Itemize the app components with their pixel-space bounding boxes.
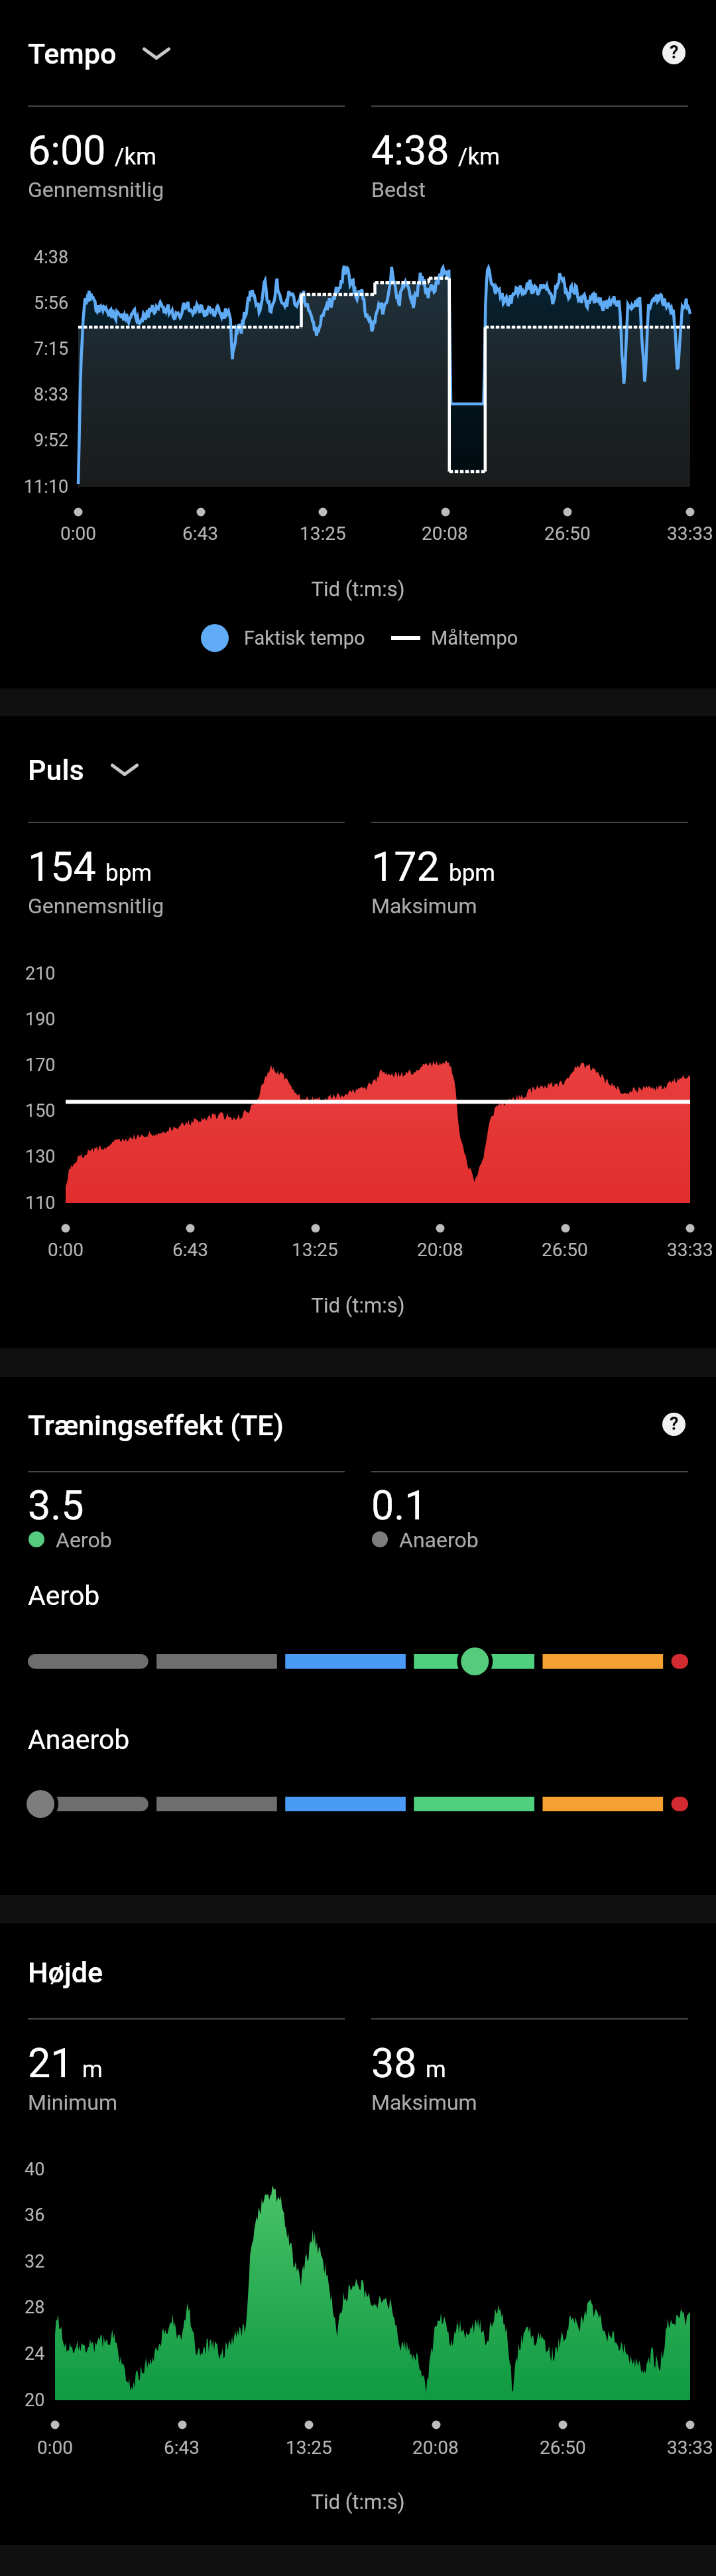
staticText: 33:33 [667,1239,713,1261]
staticText: 20:08 [412,2437,459,2459]
staticText: 6:43 [182,523,218,545]
staticText: Puls [28,753,84,787]
staticText: Tid (t:m:s) [0,577,716,601]
staticText: 172 [371,843,440,890]
staticText: Aerob [56,1527,112,1553]
staticText: /km [115,143,156,170]
staticText: 8:33 [34,384,69,405]
staticText: ? [670,1413,679,1435]
staticText: 38 [371,2039,417,2087]
staticText: 20 [25,2390,45,2411]
staticText: 26:50 [544,523,591,545]
staticText: 0:00 [37,2437,73,2459]
button[interactable]: Hjælp [648,1399,699,1449]
staticText: Tempo [28,37,117,70]
staticText: 13:25 [300,523,346,545]
staticText: Anaerob [28,1724,130,1756]
staticText: m [426,2056,446,2083]
button[interactable]: Hjælp [648,27,699,78]
staticText: 0:00 [48,1239,84,1261]
staticText: 7:15 [34,338,69,359]
staticText: Anaerob [399,1527,479,1553]
staticText: Tid (t:m:s) [0,1293,716,1317]
staticText: 36 [25,2205,45,2226]
staticText: 32 [25,2251,45,2272]
staticText: 13:25 [292,1239,338,1261]
staticText: 3.5 [28,1482,84,1529]
staticText: 170 [25,1055,56,1076]
staticText: 33:33 [667,523,713,545]
staticText: 154 [28,843,96,890]
staticText: Måltempo [431,627,518,649]
button[interactable]: Skjul afsnit [99,743,150,794]
staticText: 4:38 [371,127,449,174]
staticText: 0:00 [60,523,96,545]
staticText: Højde [28,1956,103,1989]
staticText: 11:10 [24,476,69,497]
staticText: ? [670,42,679,63]
staticText: 0.1 [371,1482,428,1529]
staticText: 26:50 [540,2437,586,2459]
staticText: Bedst [371,177,426,202]
staticText: Tid (t:m:s) [0,2490,716,2514]
staticText: 40 [25,2159,45,2180]
staticText: 33:33 [667,2437,713,2459]
staticText: 28 [25,2297,45,2318]
staticText: 6:00 [28,127,106,174]
staticText: /km [458,143,500,170]
staticText: Gennemsnitlig [28,177,164,202]
button[interactable]: Skjul afsnit [131,27,182,78]
staticText: 26:50 [542,1239,588,1261]
staticText: Minimum [28,2090,117,2115]
staticText: 150 [25,1100,56,1122]
staticText: Maksimum [371,2090,477,2115]
staticText: 190 [25,1009,56,1030]
staticText: Faktisk tempo [244,627,365,649]
staticText: 6:43 [164,2437,200,2459]
staticText: bpm [449,860,495,887]
staticText: 9:52 [34,430,69,451]
staticText: 4:38 [34,247,69,268]
staticText: Maksimum [371,893,477,919]
staticText: Træningseffekt (TE) [28,1409,284,1442]
staticText: 5:56 [34,292,69,314]
staticText: m [82,2056,103,2083]
staticText: Gennemsnitlig [28,893,164,919]
staticText: 20:08 [422,523,468,545]
staticText: 6:43 [172,1239,208,1261]
staticText: 110 [25,1192,56,1214]
staticText: 24 [25,2343,45,2364]
staticText: 20:08 [417,1239,463,1261]
staticText: 130 [25,1146,56,1167]
staticText: 210 [25,963,56,984]
staticText: bpm [105,860,152,887]
staticText: 13:25 [286,2437,332,2459]
staticText: Aerob [28,1580,100,1612]
staticText: 21 [28,2039,74,2087]
